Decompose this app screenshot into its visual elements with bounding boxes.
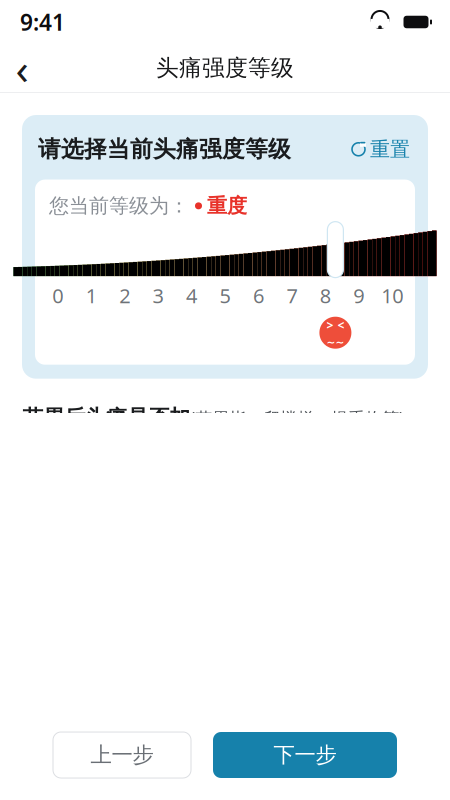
button[interactable]: 上一步 <box>53 732 191 778</box>
staticText: 头痛强度等级 <box>156 54 294 82</box>
button[interactable]: 返回 <box>0 46 44 90</box>
staticText: ∼∼ <box>326 336 344 348</box>
button[interactable]: 重置 <box>349 133 412 166</box>
staticText: 上一步 <box>90 742 153 768</box>
staticText: 9:41 <box>20 7 65 37</box>
staticText: 5 <box>219 282 230 309</box>
staticText: < <box>337 317 344 333</box>
staticText: 请选择当前头痛强度等级 <box>38 135 291 163</box>
button[interactable]: 下一步 <box>213 732 397 778</box>
staticText: 0 <box>52 282 63 309</box>
staticText: 4 <box>186 282 197 309</box>
staticText: 劳累后头痛是否加重？ <box>22 405 190 457</box>
staticText: 重度 <box>207 194 247 218</box>
staticText: 重置 <box>370 137 410 162</box>
staticText: 6 <box>253 282 264 309</box>
staticText: ‹ <box>15 40 28 96</box>
staticText: 7 <box>286 282 297 309</box>
staticText: 8 <box>320 282 331 309</box>
staticText: 2 <box>119 282 130 309</box>
staticText: (劳累指：爬楼梯，提重物等) <box>190 407 404 430</box>
staticText: 您当前等级为： <box>49 194 189 218</box>
staticText: 下一步 <box>273 742 336 768</box>
staticText: 10 <box>381 282 403 309</box>
staticText: 3 <box>153 282 164 309</box>
staticText: 1 <box>86 282 97 309</box>
staticText: > <box>326 317 333 333</box>
staticText: 9 <box>353 282 364 309</box>
